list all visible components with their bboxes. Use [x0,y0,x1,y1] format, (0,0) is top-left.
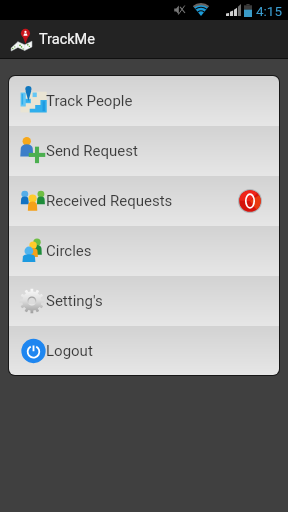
staticText: Logout [46,342,93,360]
staticText: Setting's [46,292,103,310]
staticText: TrackMe [39,31,95,48]
button[interactable]: Track People [9,76,279,126]
staticText: Track People [46,92,133,110]
button[interactable]: Received Requests [9,176,279,226]
staticText: Send Request [46,142,138,160]
staticText: 4:15 [256,3,283,19]
button[interactable]: Setting's [9,276,279,326]
other: Pending requests badge [238,189,262,213]
button[interactable]: Send Request [9,126,279,176]
staticText: Received Requests [46,192,173,210]
button[interactable]: Circles [9,226,279,276]
button[interactable]: Logout [9,326,279,375]
staticText: Circles [46,242,92,260]
